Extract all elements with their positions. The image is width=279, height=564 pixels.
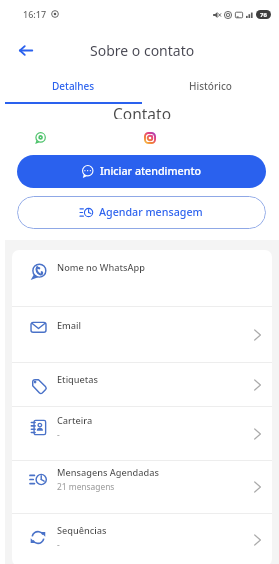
staticText: Carteira [57, 414, 93, 427]
staticText: Email [57, 319, 82, 332]
button[interactable]: Instagram [144, 132, 156, 144]
button[interactable]: Nome no WhatsApp [12, 250, 272, 306]
button[interactable]: Mensagens Agendadas [12, 461, 272, 513]
staticText: Agendar mensagem [99, 205, 203, 220]
button[interactable]: Email [12, 307, 272, 362]
button[interactable]: Sequências [12, 514, 272, 564]
staticText: Mensagens Agendadas [57, 466, 159, 479]
staticText: Sequências [57, 524, 107, 537]
button[interactable]: Detalhes [5, 74, 142, 98]
staticText: Histórico [189, 79, 232, 93]
button[interactable]: Agendar mensagem [17, 196, 266, 229]
staticText: Sobre o contato [90, 41, 195, 60]
staticText: - [57, 429, 60, 440]
staticText: 76 [260, 11, 267, 19]
staticText: Nome no WhatsApp [57, 261, 145, 274]
button[interactable]: Carteira [12, 407, 272, 460]
staticText: Etiquetas [57, 373, 99, 386]
staticText: 16:17 [23, 8, 47, 20]
staticText: Iniciar atendimento [100, 164, 202, 179]
button[interactable]: Histórico [142, 74, 279, 98]
button[interactable]: Iniciar atendimento [17, 155, 266, 188]
staticText: Detalhes [52, 79, 95, 93]
button[interactable]: WhatsApp [34, 132, 46, 144]
staticText: 21 mensagens [57, 481, 115, 492]
button[interactable]: Etiquetas [12, 363, 272, 406]
button[interactable]: Voltar [12, 37, 38, 63]
staticText: - [57, 539, 60, 550]
staticText: Contato [113, 103, 172, 119]
